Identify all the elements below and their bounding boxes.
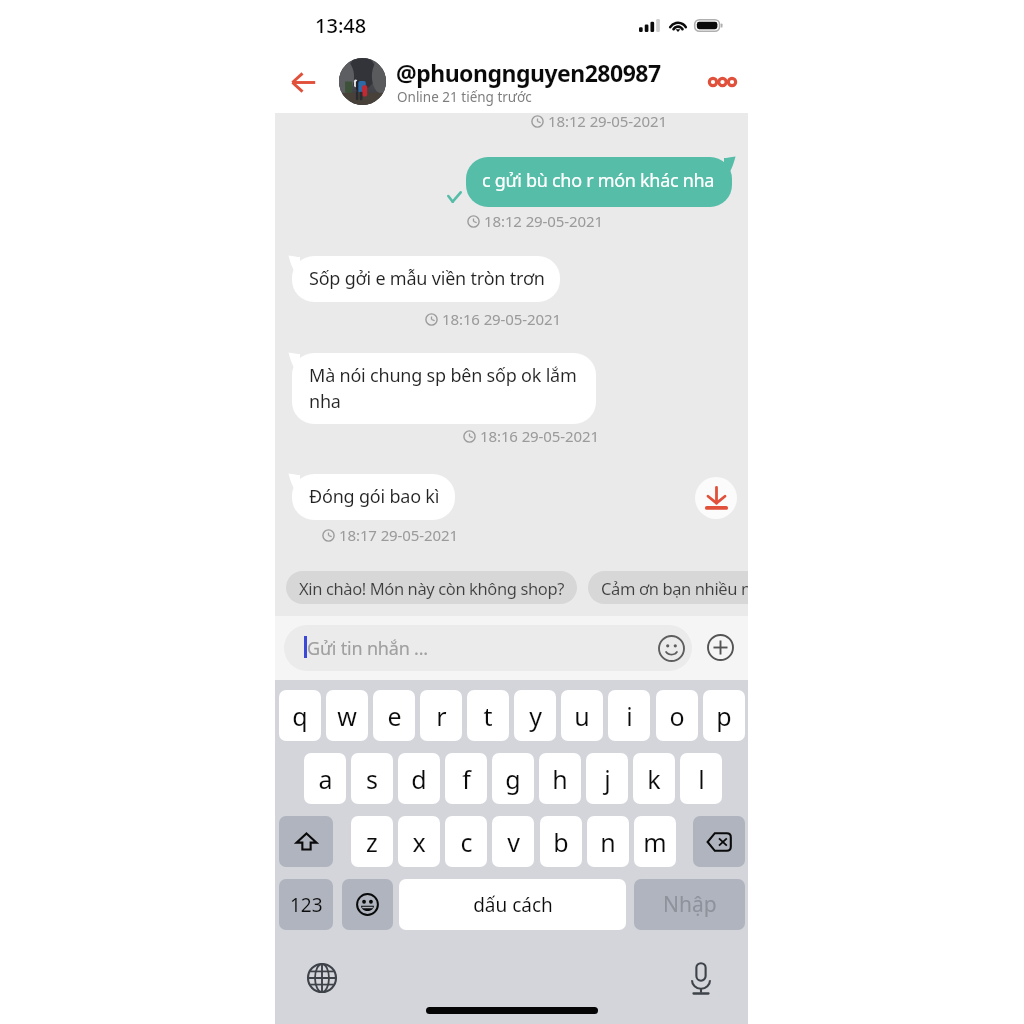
- staticText: Xin chào! Món này còn không shop?: [299, 577, 564, 599]
- button[interactable]: Đóng gói bao kì: [292, 474, 455, 520]
- button[interactable]: e: [373, 690, 415, 741]
- button[interactable]: Voice input: [681, 958, 721, 998]
- button[interactable]: f: [445, 753, 487, 804]
- staticText: v: [507, 825, 520, 859]
- staticText: 13:48: [315, 12, 367, 39]
- button[interactable]: a: [304, 753, 346, 804]
- staticText: y: [529, 699, 542, 733]
- button[interactable]: Xin chào! Món này còn không shop?: [286, 571, 577, 604]
- button[interactable]: Backspace: [693, 816, 745, 867]
- staticText: n: [600, 825, 616, 859]
- staticText: z: [366, 825, 378, 859]
- staticText: m: [643, 825, 667, 859]
- button[interactable]: u: [561, 690, 603, 741]
- button[interactable]: More options: [697, 60, 747, 104]
- button[interactable]: b: [540, 816, 582, 867]
- staticText: l: [698, 762, 705, 796]
- button[interactable]: v: [492, 816, 534, 867]
- staticText: Gửi tin nhắn ...: [307, 636, 428, 661]
- staticText: @phuongnguyen280987: [396, 57, 661, 88]
- staticText: s: [366, 762, 378, 796]
- button[interactable]: c: [445, 816, 487, 867]
- button[interactable]: p: [703, 690, 745, 741]
- button[interactable]: Gửi tin nhắn ...: [284, 625, 692, 671]
- staticText: j: [604, 762, 611, 796]
- staticText: k: [647, 762, 661, 796]
- staticText: o: [669, 699, 685, 733]
- staticText: Sốp gởi e mẫu viền tròn trơn: [309, 266, 545, 291]
- button[interactable]: q: [279, 690, 321, 741]
- staticText: w: [337, 699, 357, 733]
- button[interactable]: n: [587, 816, 629, 867]
- staticText: g: [505, 762, 521, 796]
- staticText: 18:16 29-05-2021: [480, 426, 599, 446]
- button[interactable]: x: [398, 816, 440, 867]
- staticText: c gửi bù cho r món khác nha: [482, 168, 715, 193]
- button[interactable]: d: [398, 753, 440, 804]
- button[interactable]: t: [467, 690, 509, 741]
- button[interactable]: Emoji: [657, 634, 685, 662]
- staticText: 18:12 29-05-2021: [484, 211, 603, 231]
- button[interactable]: j: [586, 753, 628, 804]
- button[interactable]: Emoji keyboard: [342, 879, 393, 930]
- staticText: Cảm ơn bạn nhiều nha: [601, 577, 748, 599]
- button[interactable]: Nhập: [634, 879, 745, 930]
- staticText: Online 21 tiếng trước: [397, 88, 532, 106]
- button[interactable]: Back: [279, 60, 327, 104]
- button[interactable]: y: [514, 690, 556, 741]
- staticText: 123: [290, 892, 323, 918]
- button[interactable]: c gửi bù cho r món khác nha: [466, 157, 732, 207]
- staticText: d: [411, 762, 427, 796]
- staticText: h: [552, 762, 568, 796]
- staticText: p: [716, 699, 732, 733]
- staticText: 18:12 29-05-2021: [548, 111, 667, 131]
- button[interactable]: Sốp gởi e mẫu viền tròn trơn: [292, 256, 560, 302]
- staticText: u: [574, 699, 590, 733]
- button[interactable]: dấu cách: [399, 879, 626, 930]
- button[interactable]: Download: [695, 477, 737, 519]
- button[interactable]: w: [326, 690, 368, 741]
- staticText: q: [292, 699, 308, 733]
- button[interactable]: l: [680, 753, 722, 804]
- staticText: f: [462, 762, 471, 796]
- staticText: dấu cách: [473, 892, 553, 918]
- button[interactable]: i: [608, 690, 650, 741]
- staticText: r: [436, 699, 447, 733]
- button[interactable]: o: [656, 690, 698, 741]
- staticText: 18:16 29-05-2021: [442, 309, 561, 329]
- staticText: 18:17 29-05-2021: [339, 525, 458, 545]
- button[interactable]: Shift: [279, 816, 333, 867]
- staticText: Đóng gói bao kì: [309, 484, 440, 509]
- button[interactable]: Numbers: [279, 879, 333, 930]
- button[interactable]: z: [351, 816, 393, 867]
- button[interactable]: Profile photo: [339, 58, 386, 105]
- staticText: b: [553, 825, 569, 859]
- button[interactable]: h: [539, 753, 581, 804]
- button[interactable]: Mà nói chung sp bên sốp ok lắm nha: [292, 353, 596, 424]
- button[interactable]: r: [420, 690, 462, 741]
- button[interactable]: m: [634, 816, 676, 867]
- staticText: Nhập: [663, 890, 717, 919]
- button[interactable]: s: [351, 753, 393, 804]
- staticText: i: [626, 699, 633, 733]
- staticText: x: [412, 825, 426, 859]
- button[interactable]: k: [633, 753, 675, 804]
- staticText: c: [460, 825, 473, 859]
- staticText: Mà nói chung sp bên sốp ok lắm nha: [309, 363, 581, 413]
- staticText: e: [387, 699, 402, 733]
- staticText: a: [318, 762, 333, 796]
- staticText: t: [483, 699, 493, 733]
- button[interactable]: g: [492, 753, 534, 804]
- button[interactable]: Change language: [302, 958, 342, 998]
- button[interactable]: Cảm ơn bạn nhiều nha: [588, 571, 748, 604]
- button[interactable]: Add attachment: [707, 634, 734, 661]
